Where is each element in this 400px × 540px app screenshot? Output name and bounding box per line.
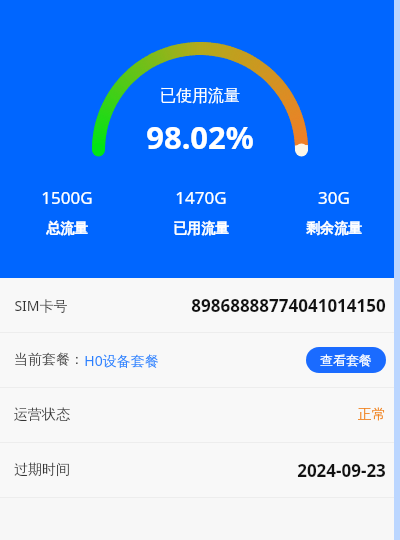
- staticText: 98.02%: [146, 116, 254, 158]
- staticText: 2024-09-23: [297, 459, 386, 482]
- staticText: SIM卡号: [14, 296, 68, 315]
- staticText: 过期时间: [14, 461, 70, 479]
- staticText: 运营状态: [14, 406, 70, 424]
- staticText: H0设备套餐: [84, 351, 159, 370]
- button[interactable]: 查看套餐: [306, 347, 386, 373]
- staticText: 总流量: [46, 220, 88, 238]
- staticText: 正常: [358, 406, 386, 424]
- staticText: 剩余流量: [306, 220, 362, 238]
- button[interactable]: 过期时间: [0, 443, 400, 497]
- staticText: 已使用流量: [160, 86, 240, 106]
- staticText: 1470G: [175, 186, 227, 209]
- button[interactable]: 当前套餐：: [0, 333, 400, 387]
- button[interactable]: SIM卡号: [0, 278, 400, 332]
- staticText: 89868888774041014150: [191, 294, 386, 317]
- button[interactable]: 运营状态: [0, 388, 400, 442]
- staticText: 当前套餐：: [14, 351, 84, 369]
- staticText: 查看套餐: [320, 352, 372, 368]
- staticText: 已用流量: [173, 220, 229, 238]
- staticText: 30G: [318, 186, 350, 209]
- staticText: 1500G: [41, 186, 93, 209]
